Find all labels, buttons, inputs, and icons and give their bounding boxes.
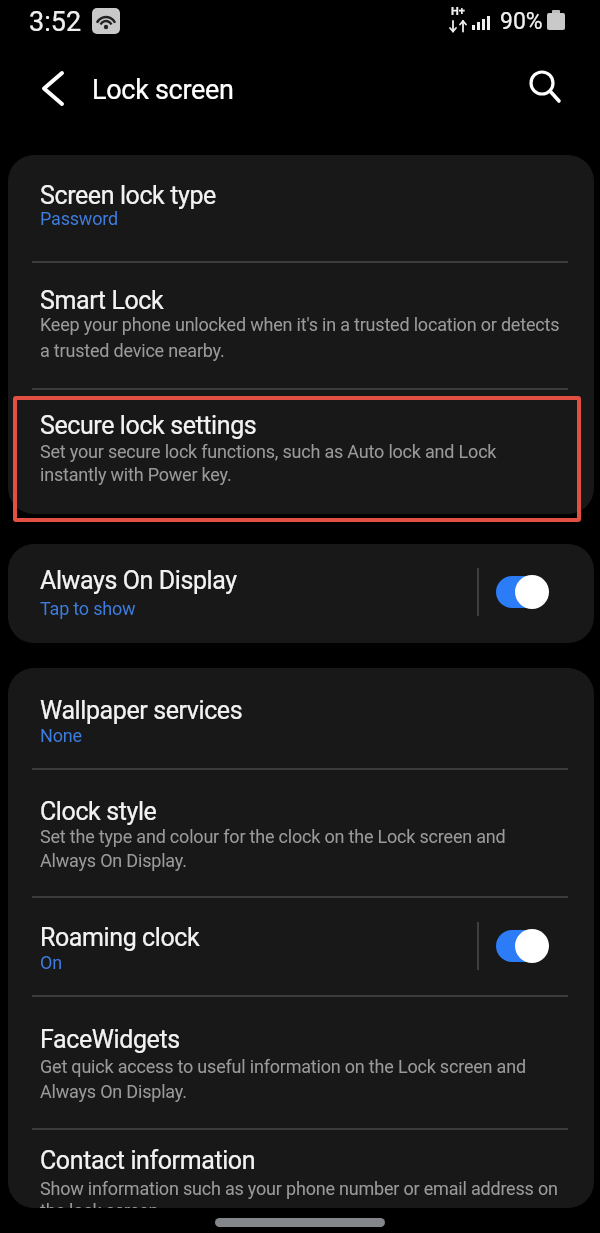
button[interactable]: [28, 62, 80, 114]
button[interactable]: [8, 668, 594, 769]
staticText: Set your secure lock functions, such as …: [40, 441, 497, 462]
staticText: Always On Display.: [40, 850, 187, 871]
staticText: Tap to show: [40, 598, 136, 619]
staticText: None: [40, 725, 82, 746]
button[interactable]: [496, 929, 550, 963]
button[interactable]: [8, 1130, 594, 1208]
staticText: Password: [40, 208, 118, 229]
staticText: Roaming clock: [40, 923, 200, 952]
staticText: Always On Display.: [40, 1081, 187, 1102]
button[interactable]: [8, 263, 594, 388]
staticText: Set the type and colour for the clock on…: [40, 826, 506, 847]
staticText: Secure lock settings: [40, 411, 257, 440]
staticText: instantly with Power key.: [40, 464, 232, 485]
staticText: FaceWidgets: [40, 1025, 180, 1054]
staticText: Smart Lock: [40, 286, 164, 315]
button[interactable]: [8, 155, 594, 262]
staticText: Screen lock type: [40, 181, 216, 210]
button[interactable]: [518, 60, 574, 116]
button[interactable]: [8, 997, 594, 1129]
staticText: a trusted device nearby.: [40, 340, 225, 361]
button[interactable]: [8, 389, 594, 514]
button[interactable]: [8, 544, 594, 643]
staticText: Lock screen: [92, 74, 234, 106]
button[interactable]: [496, 575, 550, 609]
staticText: Contact information: [40, 1146, 256, 1175]
staticText: On: [40, 952, 62, 973]
button[interactable]: [8, 770, 594, 897]
staticText: 90%: [500, 8, 543, 35]
button[interactable]: [8, 898, 594, 996]
staticText: Keep your phone unlocked when it's in a …: [40, 314, 560, 335]
staticText: the lock screen.: [40, 1200, 163, 1208]
staticText: Clock style: [40, 797, 157, 826]
staticText: H+: [451, 5, 465, 18]
staticText: Get quick access to useful information o…: [40, 1056, 526, 1077]
staticText: Show information such as your phone numb…: [40, 1178, 558, 1199]
staticText: 3:52: [29, 6, 82, 38]
staticText: Always On Display: [40, 566, 237, 595]
staticText: Wallpaper services: [40, 696, 243, 725]
